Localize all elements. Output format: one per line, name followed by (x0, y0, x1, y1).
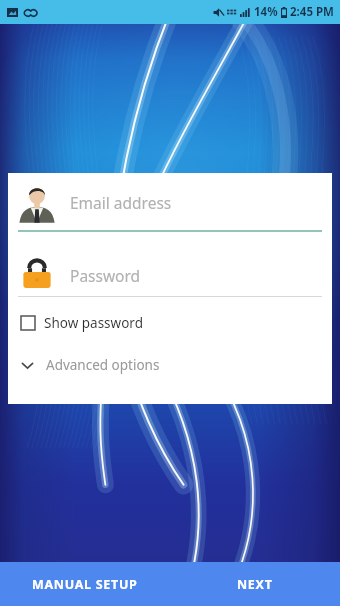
button[interactable]: Advanced options (8, 349, 332, 381)
staticText: Show password (44, 314, 143, 332)
button[interactable]: Email address (8, 173, 332, 230)
staticText: 14% (254, 4, 278, 20)
staticText: NEXT (237, 576, 273, 593)
button[interactable]: Password (8, 252, 332, 296)
button[interactable]: NEXT (170, 562, 340, 606)
staticText: Email address (70, 192, 172, 213)
staticText: Advanced options (46, 356, 160, 374)
staticText: Password (70, 265, 141, 286)
staticText: 2:45 PM (290, 4, 334, 20)
staticText: MANUAL SETUP (32, 576, 138, 593)
button[interactable]: MANUAL SETUP (0, 562, 170, 606)
button[interactable]: Show password (8, 307, 332, 339)
